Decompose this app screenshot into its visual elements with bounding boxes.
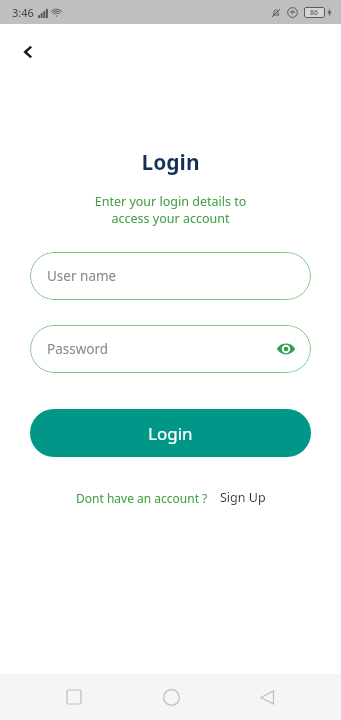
staticText: User name xyxy=(47,267,117,285)
staticText: 86 xyxy=(310,8,319,18)
button[interactable]: Show password xyxy=(273,336,299,362)
button[interactable]: Recents xyxy=(51,674,97,720)
staticText: Password xyxy=(47,340,109,358)
button[interactable]: Password xyxy=(30,325,311,373)
button[interactable]: Home xyxy=(148,674,194,720)
staticText: Sign Up xyxy=(220,489,266,506)
button[interactable]: Back xyxy=(8,32,48,72)
staticText: Login xyxy=(0,148,341,177)
button[interactable]: Back xyxy=(244,674,290,720)
button[interactable]: Login xyxy=(30,409,311,457)
staticText: Enter your login details to access your … xyxy=(0,193,341,227)
button[interactable]: Sign Up xyxy=(218,487,268,508)
staticText: Login xyxy=(148,422,193,445)
staticText: Dont have an account ? xyxy=(76,490,208,506)
button[interactable]: User name xyxy=(30,252,311,300)
staticText: 3:46 xyxy=(12,5,34,20)
button[interactable]: Dont have an account ? xyxy=(74,488,210,508)
